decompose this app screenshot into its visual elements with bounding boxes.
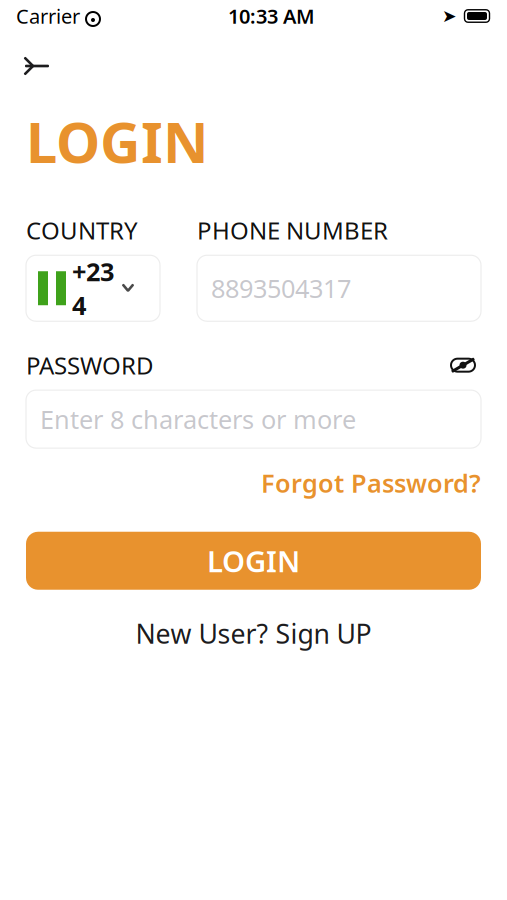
staticText: 8893504317 bbox=[211, 271, 351, 305]
staticText: COUNTRY bbox=[26, 214, 138, 246]
staticText: LOGIN bbox=[26, 104, 209, 178]
button[interactable]: Phone number bbox=[197, 255, 481, 321]
staticText: Forgot Password? bbox=[261, 466, 481, 500]
button[interactable]: Password bbox=[26, 390, 481, 448]
staticText: PASSWORD bbox=[26, 349, 154, 381]
staticText: ➤ bbox=[442, 6, 457, 26]
button[interactable]: Forgot Password? bbox=[261, 462, 481, 504]
button[interactable]: Back bbox=[0, 42, 64, 90]
staticText: Carrier bbox=[16, 3, 80, 29]
staticText: PHONE NUMBER bbox=[197, 214, 388, 246]
button[interactable]: New User? Sign UP bbox=[26, 610, 481, 657]
staticText: +234 bbox=[72, 255, 114, 322]
staticText: 10:33 AM bbox=[228, 3, 315, 29]
staticText: Enter 8 characters or more bbox=[40, 402, 356, 436]
button[interactable]: LOGIN bbox=[26, 532, 481, 590]
staticText: LOGIN bbox=[207, 541, 300, 580]
staticText: New User? Sign UP bbox=[135, 616, 371, 651]
button[interactable]: Show password bbox=[445, 352, 481, 378]
button[interactable]: Select country code bbox=[26, 255, 160, 321]
